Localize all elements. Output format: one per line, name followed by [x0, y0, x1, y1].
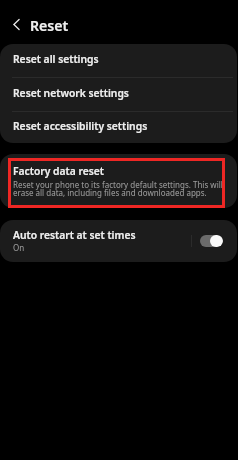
staticText: Reset all settings — [13, 53, 99, 66]
button[interactable]: Reset all settings — [0, 44, 237, 77]
button[interactable]: Auto restart at set times, on — [200, 235, 223, 247]
staticText: Reset — [30, 17, 69, 35]
button[interactable]: Reset accessibility settings — [0, 112, 237, 143]
staticText: Reset accessibility settings — [13, 120, 148, 133]
staticText: Auto restart at set times — [13, 229, 136, 242]
staticText: Reset your phone to its factory default … — [13, 181, 226, 197]
staticText: Reset network settings — [13, 87, 129, 100]
staticText: On — [13, 243, 25, 253]
button[interactable]: Reset network settings — [0, 78, 237, 111]
staticText: Factory data reset — [13, 165, 104, 178]
button[interactable]: Auto restart at set times — [0, 220, 237, 262]
button[interactable]: Factory data reset — [0, 154, 237, 208]
button[interactable]: Navigate up — [6, 14, 27, 35]
